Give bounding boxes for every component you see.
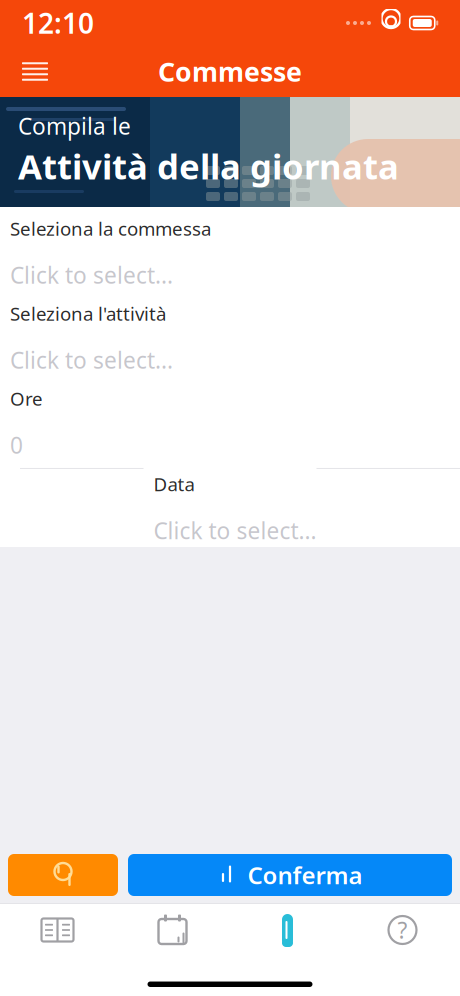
button[interactable]: Rubrica — [0, 904, 115, 956]
button[interactable]: Ore — [0, 377, 460, 462]
staticText: Click to select... — [10, 260, 173, 290]
button[interactable]: Data — [143, 462, 316, 547]
button[interactable]: Compila — [230, 904, 345, 956]
button[interactable]: Annulla — [8, 854, 118, 896]
button[interactable]: Seleziona l'attività — [0, 292, 460, 377]
staticText: Click to select... — [153, 515, 316, 545]
staticText: Attività della giornata — [18, 143, 399, 189]
staticText: Compila le — [18, 111, 131, 141]
staticText: ? — [397, 915, 407, 945]
staticText: Commesse — [158, 54, 302, 89]
staticText: 0 — [10, 430, 23, 460]
button[interactable]: Menu — [10, 52, 60, 91]
staticText: Data — [153, 472, 194, 496]
staticText: Ore — [10, 386, 43, 411]
button[interactable]: Aiuto — [345, 904, 460, 956]
staticText: Seleziona la commessa — [10, 216, 211, 241]
button[interactable]: Seleziona la commessa — [0, 207, 460, 292]
staticText: Conferma — [247, 859, 362, 891]
staticText: 12:10 — [22, 4, 94, 42]
button[interactable]: Conferma — [128, 854, 452, 896]
button[interactable]: Calendario — [115, 904, 230, 956]
staticText: Seleziona l'attività — [10, 301, 166, 326]
staticText: Click to select... — [10, 345, 173, 375]
